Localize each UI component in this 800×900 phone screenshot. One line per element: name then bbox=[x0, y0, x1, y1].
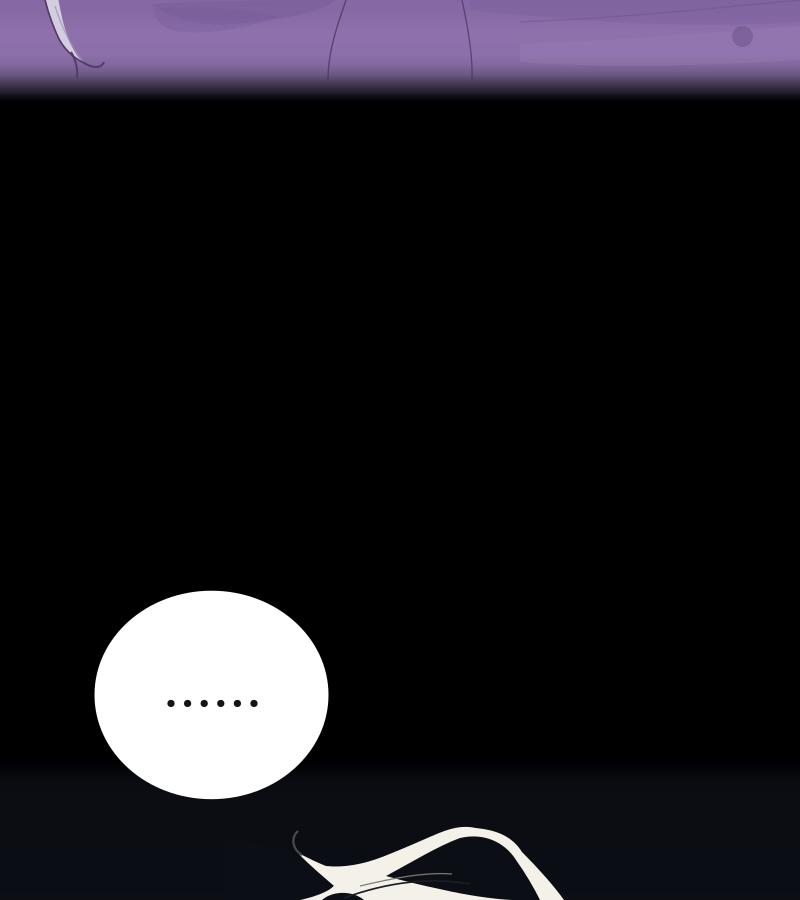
button[interactable]: Dialogue bbox=[94, 591, 328, 799]
